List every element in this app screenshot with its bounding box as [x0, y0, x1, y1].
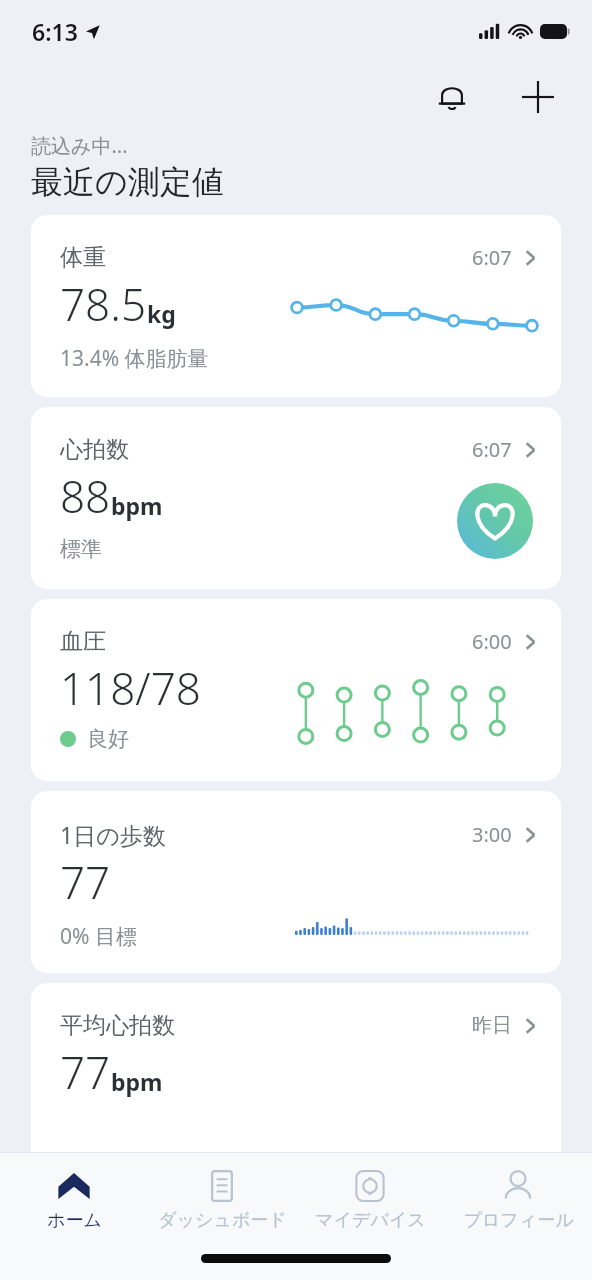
staticText: 標準 [60, 536, 102, 562]
staticText: ホーム [47, 1209, 102, 1232]
staticText: 6:07 [472, 244, 512, 271]
staticText: 心拍数 [60, 435, 129, 464]
staticText: 昨日 [472, 1013, 512, 1038]
staticText: 良好 [87, 726, 129, 752]
button[interactable]: Add [510, 69, 566, 125]
button[interactable]: マイデバイス [296, 1165, 444, 1236]
staticText: bpm [111, 1066, 163, 1097]
button[interactable]: ダッシュボード [148, 1165, 296, 1236]
staticText: 13.4% 体脂肪量 [60, 344, 209, 373]
staticText: ダッシュボード [158, 1209, 287, 1232]
staticText: プロフィール [463, 1209, 574, 1232]
staticText: 血圧 [60, 627, 106, 656]
button[interactable]: 心拍数 [31, 407, 561, 589]
staticText: 6:13 [32, 16, 78, 47]
staticText: マイデバイス [315, 1209, 426, 1232]
staticText: 6:00 [472, 628, 512, 655]
button[interactable]: プロフィール [444, 1165, 592, 1236]
staticText: kg [147, 298, 176, 329]
staticText: 平均心拍数 [60, 1011, 175, 1040]
staticText: 6:07 [472, 436, 512, 463]
staticText: 77 [60, 1042, 111, 1102]
button[interactable]: 平均心拍数 [31, 983, 561, 1165]
staticText: 78.5 [60, 274, 147, 334]
staticText: bpm [111, 490, 163, 521]
button[interactable]: ホーム [0, 1165, 148, 1236]
staticText: 体重 [60, 243, 106, 272]
staticText: 0% 目標 [60, 922, 137, 951]
button[interactable]: 1日の歩数 [31, 791, 561, 973]
button[interactable]: Notifications [424, 69, 480, 125]
button[interactable]: 血圧 [31, 599, 561, 781]
button[interactable]: 体重 [31, 215, 561, 397]
staticText: 3:00 [472, 821, 512, 848]
staticText: 77 [60, 852, 111, 912]
staticText: 88 [60, 466, 111, 526]
staticText: 1日の歩数 [60, 819, 166, 850]
staticText: 118/78 [60, 658, 201, 718]
staticText: 読込み中... [31, 132, 128, 159]
staticText: 最近の測定値 [31, 162, 224, 202]
